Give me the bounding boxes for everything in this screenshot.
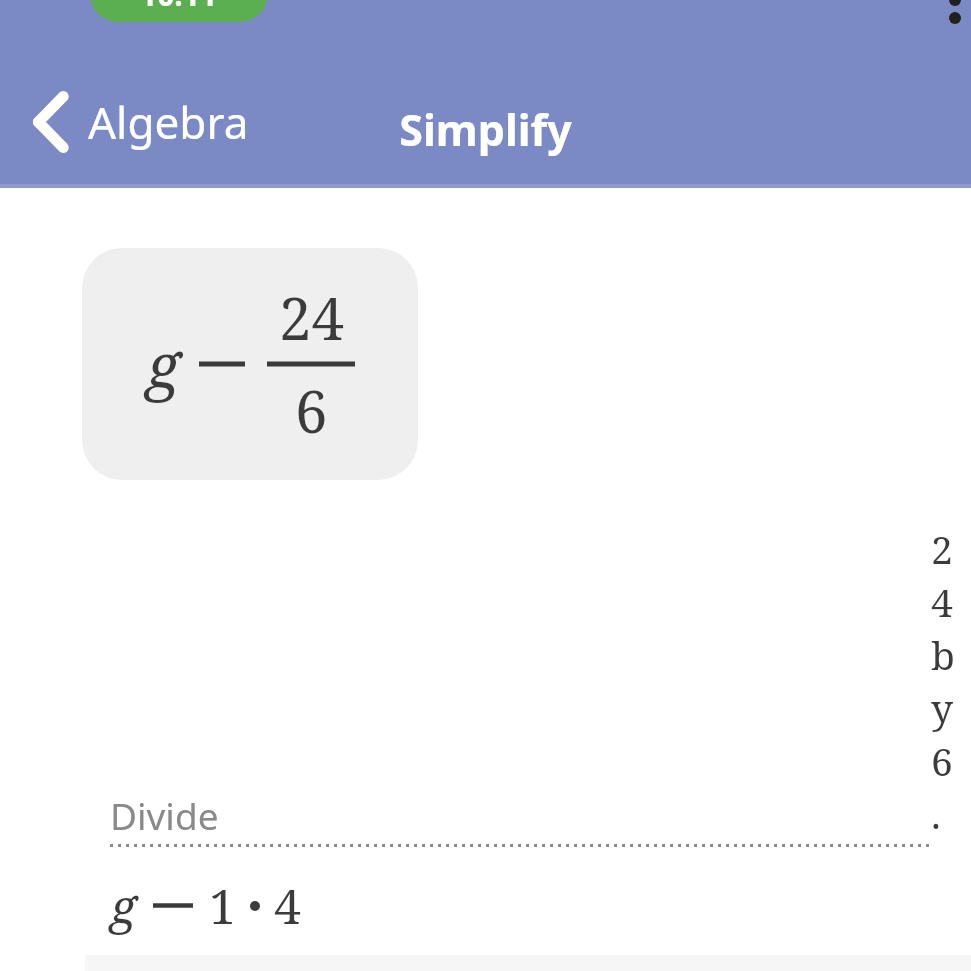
staticText: Simplify [399,100,572,159]
staticText: g [146,322,181,406]
button[interactable]: More options [945,0,965,40]
staticText: g [110,873,137,938]
button[interactable]: Divide [110,522,931,938]
staticText: 6 [295,371,328,450]
staticText: 1 [209,873,236,938]
staticText: Algebra [88,92,249,152]
button[interactable]: g [82,248,418,480]
staticText: 24 [279,278,344,357]
staticText: 10:11 [140,0,218,15]
button[interactable]: Algebra [26,86,255,158]
staticText: Divide [110,790,219,840]
staticText: 4 [274,873,301,938]
